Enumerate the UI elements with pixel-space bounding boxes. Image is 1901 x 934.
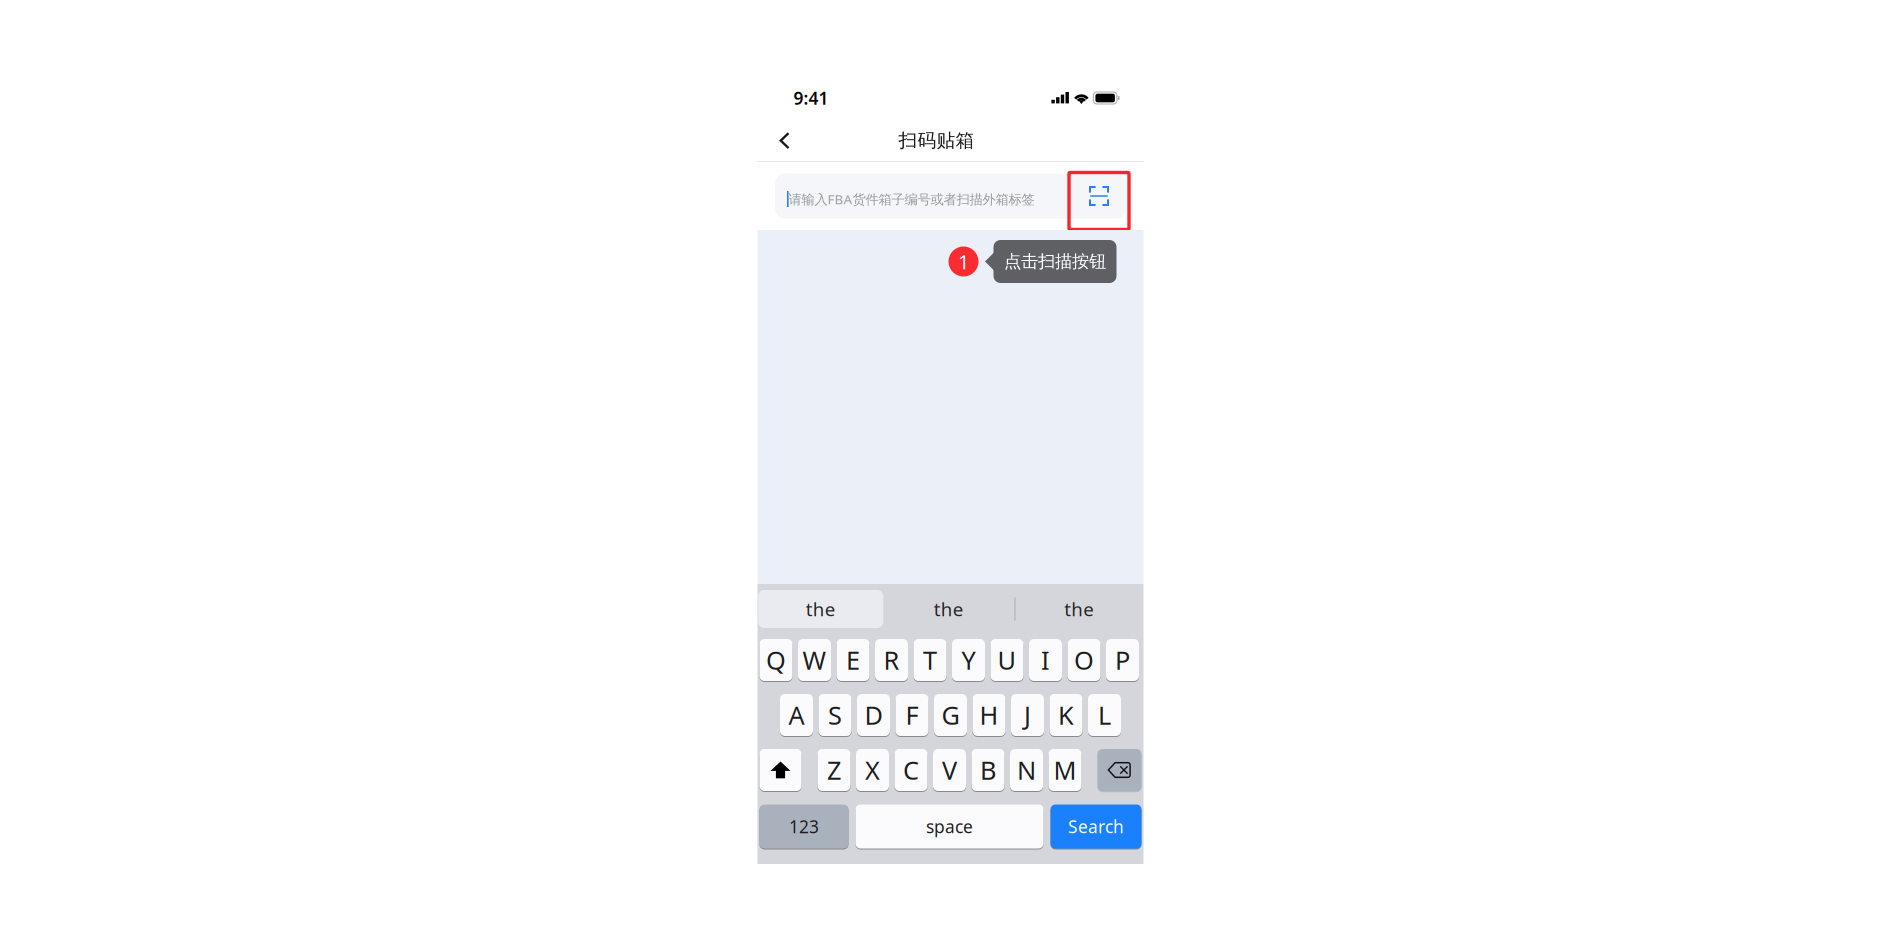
button[interactable]: E: [836, 638, 869, 681]
button[interactable]: Shift: [759, 748, 801, 791]
button[interactable]: T: [913, 638, 946, 681]
button[interactable]: X: [856, 748, 889, 791]
button[interactable]: M: [1048, 748, 1081, 791]
staticText: O: [1074, 643, 1094, 677]
button[interactable]: space: [855, 804, 1043, 849]
button[interactable]: N: [1010, 748, 1043, 791]
staticText: K: [1058, 698, 1074, 732]
staticText: C: [903, 753, 919, 787]
staticText: 请输入FBA货件箱子编号或者扫描外箱标签: [789, 190, 1035, 208]
button[interactable]: 请输入FBA货件箱子编号或者扫描外箱标签: [775, 173, 1126, 218]
staticText: the: [934, 597, 964, 621]
staticText: A: [788, 698, 804, 732]
button[interactable]: U: [990, 638, 1023, 681]
staticText: X: [865, 753, 880, 787]
staticText: 123: [789, 815, 819, 838]
button[interactable]: W: [798, 638, 831, 681]
button[interactable]: the: [1014, 590, 1144, 628]
staticText: Y: [961, 643, 975, 677]
button[interactable]: Y: [952, 638, 985, 681]
staticText: J: [1024, 698, 1031, 732]
button[interactable]: C: [894, 748, 927, 791]
button[interactable]: O: [1067, 638, 1100, 681]
staticText: space: [926, 815, 973, 838]
staticText: N: [1017, 753, 1036, 787]
staticText: E: [846, 643, 860, 677]
staticText: 1: [958, 248, 969, 275]
staticText: B: [980, 753, 996, 787]
button[interactable]: L: [1088, 693, 1121, 736]
staticText: 9:41: [793, 86, 828, 109]
button[interactable]: Z: [817, 748, 850, 791]
staticText: R: [883, 643, 899, 677]
button[interactable]: 返回: [768, 117, 800, 161]
staticText: Search: [1068, 815, 1124, 838]
staticText: H: [979, 698, 998, 732]
staticText: 扫码贴箱: [898, 129, 974, 152]
staticText: Z: [827, 753, 841, 787]
button[interactable]: S: [818, 693, 851, 736]
staticText: S: [828, 698, 842, 732]
staticText: M: [1053, 753, 1076, 787]
staticText: the: [1064, 597, 1094, 621]
staticText: 点击扫描按钮: [1004, 251, 1106, 272]
button[interactable]: the: [883, 590, 1014, 628]
button[interactable]: 123: [759, 804, 848, 849]
button[interactable]: K: [1049, 693, 1082, 736]
staticText: L: [1098, 698, 1111, 732]
button[interactable]: H: [972, 693, 1005, 736]
staticText: T: [923, 643, 937, 677]
button[interactable]: 扫描: [1072, 170, 1126, 221]
staticText: Q: [766, 643, 786, 677]
button[interactable]: G: [934, 693, 967, 736]
staticText: V: [942, 753, 957, 787]
button[interactable]: P: [1106, 638, 1139, 681]
button[interactable]: Delete: [1097, 748, 1141, 791]
button[interactable]: F: [895, 693, 928, 736]
button[interactable]: Q: [759, 638, 792, 681]
button[interactable]: V: [933, 748, 966, 791]
staticText: G: [941, 698, 959, 732]
button[interactable]: D: [857, 693, 890, 736]
staticText: F: [905, 698, 918, 732]
button[interactable]: I: [1029, 638, 1062, 681]
staticText: D: [864, 698, 882, 732]
button[interactable]: B: [971, 748, 1004, 791]
staticText: W: [802, 643, 826, 677]
button[interactable]: R: [875, 638, 908, 681]
staticText: the: [806, 597, 836, 621]
staticText: P: [1115, 643, 1130, 677]
button[interactable]: Search: [1050, 804, 1141, 849]
button[interactable]: the: [758, 590, 883, 628]
button[interactable]: A: [780, 693, 813, 736]
staticText: U: [997, 643, 1016, 677]
staticText: I: [1041, 643, 1050, 677]
button[interactable]: J: [1011, 693, 1044, 736]
